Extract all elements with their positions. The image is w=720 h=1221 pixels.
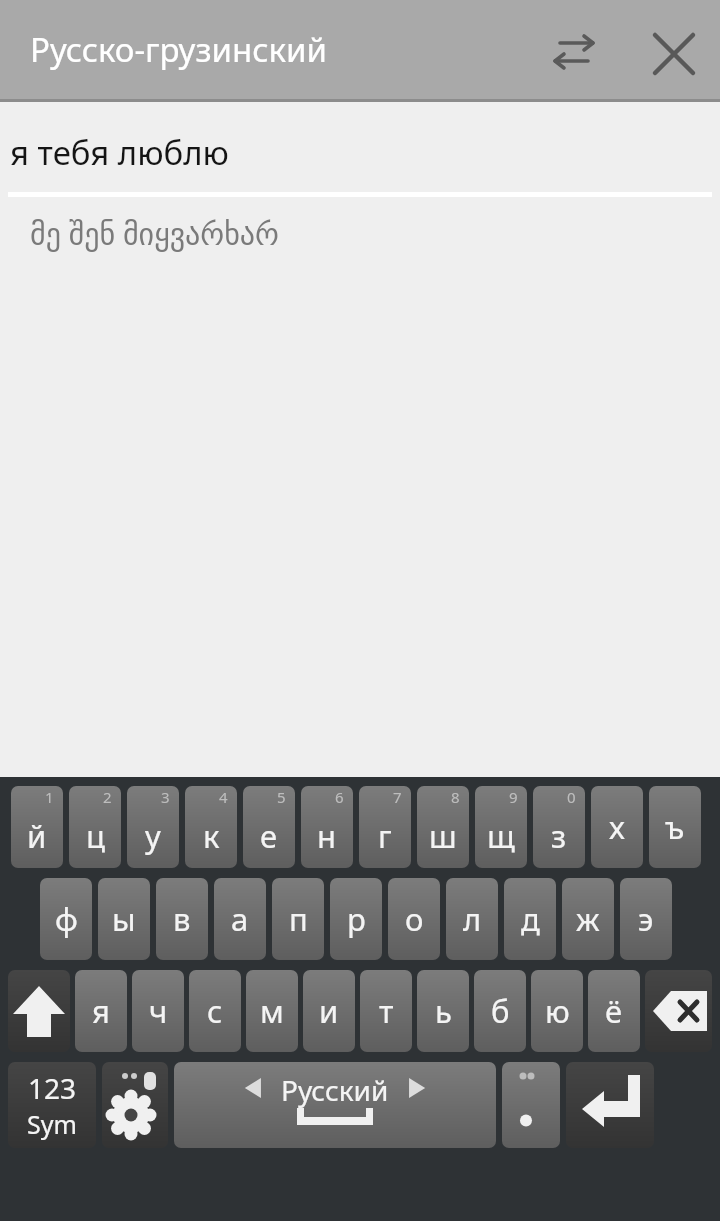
button[interactable]: Swap languages	[546, 21, 604, 79]
button[interactable]: 3	[127, 786, 179, 868]
staticText: т	[379, 990, 394, 1032]
button[interactable]: ь	[417, 970, 469, 1052]
staticText: 4	[219, 787, 228, 807]
button[interactable]: ф	[40, 878, 92, 960]
staticText: г	[378, 815, 392, 857]
staticText: б	[491, 990, 510, 1032]
button[interactable]: 9	[475, 786, 527, 868]
button[interactable]: э	[620, 878, 672, 960]
staticText: 0	[567, 787, 576, 807]
button[interactable]: Close	[638, 18, 702, 82]
staticText: в	[173, 898, 191, 940]
staticText: 7	[393, 787, 402, 807]
button[interactable]: Space, Russian	[174, 1062, 496, 1148]
staticText: к	[203, 815, 220, 857]
button[interactable]: п	[272, 878, 324, 960]
staticText: ф	[55, 898, 78, 940]
staticText: Sym	[27, 1107, 77, 1141]
button[interactable]: я	[75, 970, 127, 1052]
button[interactable]: ю	[531, 970, 583, 1052]
button[interactable]: м	[246, 970, 298, 1052]
button[interactable]: ч	[132, 970, 184, 1052]
button[interactable]: 4	[185, 786, 237, 868]
staticText: д	[521, 898, 540, 940]
button[interactable]: 7	[359, 786, 411, 868]
staticText: р	[347, 898, 366, 940]
staticText: с	[207, 990, 223, 1032]
button[interactable]: 8	[417, 786, 469, 868]
staticText: 9	[509, 787, 518, 807]
staticText: ь	[435, 990, 452, 1032]
staticText: н	[317, 815, 337, 857]
button[interactable]: 123	[8, 1062, 96, 1148]
button[interactable]: 1	[11, 786, 63, 868]
button[interactable]: ж	[562, 878, 614, 960]
staticText: ж	[576, 898, 600, 940]
staticText: Русский	[281, 1071, 389, 1109]
staticText: 3	[161, 787, 170, 807]
staticText: п	[289, 898, 308, 940]
staticText: л	[463, 898, 482, 940]
staticText: 8	[451, 787, 460, 807]
button[interactable]: а	[214, 878, 266, 960]
staticText: Русско-грузинский	[30, 27, 328, 72]
staticText: м	[260, 990, 284, 1032]
staticText: о	[405, 898, 424, 940]
staticText: е	[260, 815, 278, 857]
staticText: 2	[103, 787, 112, 807]
button[interactable]: ё	[588, 970, 640, 1052]
button[interactable]: 2	[69, 786, 121, 868]
button[interactable]: о	[388, 878, 440, 960]
staticText: 5	[277, 787, 286, 807]
staticText: и	[319, 990, 339, 1032]
staticText: а	[231, 898, 249, 940]
staticText: й	[27, 815, 47, 857]
staticText: ш	[429, 815, 457, 857]
staticText: 1	[45, 787, 54, 807]
button[interactable]: 6	[301, 786, 353, 868]
staticText: 6	[335, 787, 344, 807]
button[interactable]: Period	[502, 1062, 560, 1148]
staticText: ы	[112, 898, 136, 940]
button[interactable]: Backspace	[645, 970, 712, 1052]
staticText: э	[638, 898, 654, 940]
button[interactable]: ъ	[649, 786, 701, 868]
staticText: я	[92, 990, 110, 1032]
button[interactable]: Settings	[102, 1062, 168, 1148]
staticText: ц	[86, 815, 105, 857]
staticText: ч	[149, 990, 168, 1032]
button[interactable]: х	[591, 786, 643, 868]
staticText: მე შენ მიყვარხარ	[30, 213, 279, 254]
staticText: у	[145, 815, 161, 857]
staticText: я тебя люблю	[10, 130, 229, 175]
button[interactable]: с	[189, 970, 241, 1052]
button[interactable]: Shift	[8, 970, 70, 1052]
staticText: ъ	[665, 806, 685, 848]
staticText: щ	[487, 815, 515, 857]
button[interactable]: 0	[533, 786, 585, 868]
button[interactable]: Enter	[566, 1062, 654, 1148]
button[interactable]: 5	[243, 786, 295, 868]
staticText: 123	[28, 1069, 77, 1107]
button[interactable]: т	[360, 970, 412, 1052]
button[interactable]: б	[474, 970, 526, 1052]
button[interactable]: д	[504, 878, 556, 960]
staticText: ё	[605, 990, 623, 1032]
button[interactable]: ы	[98, 878, 150, 960]
staticText: х	[609, 806, 625, 848]
staticText: з	[551, 815, 567, 857]
button[interactable]: в	[156, 878, 208, 960]
button[interactable]: л	[446, 878, 498, 960]
button[interactable]: р	[330, 878, 382, 960]
staticText: ю	[545, 990, 570, 1032]
button[interactable]: и	[303, 970, 355, 1052]
